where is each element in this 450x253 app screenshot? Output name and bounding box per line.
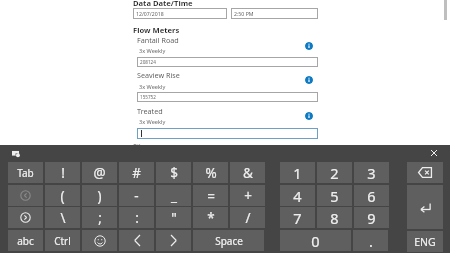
button[interactable]: 8 (317, 207, 352, 228)
button[interactable]: 1 (280, 162, 315, 183)
button[interactable]: Close keyboard (428, 147, 440, 159)
button[interactable]: Space (193, 230, 264, 251)
staticText: 208124 (140, 59, 156, 65)
staticText: / (245, 209, 251, 227)
button[interactable]: ) (82, 185, 117, 206)
button[interactable]: / (230, 207, 265, 228)
staticText: 3x Weekly (139, 118, 166, 126)
button[interactable]: Emoji (82, 230, 117, 251)
button[interactable]: + (230, 185, 265, 206)
button[interactable]: 4 (280, 185, 315, 206)
staticText: Fantail Road (137, 35, 179, 45)
staticText: 1 (293, 163, 302, 183)
button[interactable]: Enter (407, 185, 443, 229)
button[interactable]: Keyboard layout options (11, 149, 21, 158)
staticText: Space (215, 234, 243, 248)
staticText: ENG (414, 235, 436, 249)
button[interactable] (137, 128, 318, 139)
staticText: ; (98, 209, 102, 227)
button[interactable]: Move cursor right (156, 230, 191, 251)
button[interactable]: 6 (354, 185, 389, 206)
staticText: 3x Weekly (139, 47, 166, 55)
button[interactable]: ; (82, 207, 117, 228)
staticText: - (134, 187, 139, 205)
button[interactable]: 7 (280, 207, 315, 228)
staticText: 9 (367, 208, 376, 228)
staticText: Data Date/Time (133, 0, 193, 8)
staticText: Tab (17, 166, 34, 180)
button[interactable]: 12/07/2018 (133, 8, 227, 19)
staticText: = (207, 187, 215, 205)
staticText: abc (17, 234, 34, 248)
button[interactable]: % (193, 162, 228, 183)
button[interactable]: 155752 (137, 92, 318, 102)
button[interactable]: Redo (8, 207, 43, 228)
staticText: ! (61, 164, 65, 182)
staticText: + (244, 187, 252, 205)
staticText: # (132, 164, 141, 182)
button[interactable]: $ (156, 162, 191, 183)
staticText: 8 (330, 208, 339, 228)
button[interactable]: = (193, 185, 228, 206)
staticText: Treated (137, 106, 163, 116)
staticText: : (135, 209, 139, 227)
staticText: ( (60, 187, 65, 205)
button[interactable]: \ (45, 207, 80, 228)
button[interactable]: : (119, 207, 154, 228)
button[interactable]: 9 (354, 207, 389, 228)
staticText: 7 (293, 208, 302, 228)
button[interactable]: _ (156, 185, 191, 206)
staticText: 4 (293, 186, 302, 206)
button[interactable]: Info (305, 42, 313, 50)
button[interactable]: 0 (280, 230, 351, 251)
staticText: 0 (311, 231, 320, 251)
button[interactable]: 2 (317, 162, 352, 183)
staticText: " (171, 209, 177, 227)
staticText: 3 (367, 163, 376, 183)
staticText: * (207, 209, 215, 227)
staticText: % (205, 164, 217, 182)
button[interactable]: Ctrl (45, 230, 80, 251)
staticText: & (243, 164, 253, 182)
button[interactable]: Move cursor left (119, 230, 154, 251)
staticText: 2 (330, 163, 339, 183)
staticText: Ctrl (54, 234, 71, 248)
button[interactable]: ( (45, 185, 80, 206)
staticText: Seaview Rise (137, 70, 180, 80)
button[interactable]: * (193, 207, 228, 228)
button[interactable]: 208124 (137, 57, 318, 67)
button[interactable]: abc (8, 230, 43, 251)
button[interactable]: Info (305, 76, 313, 84)
button[interactable]: Tab (8, 162, 43, 183)
button[interactable]: . (353, 230, 388, 251)
button[interactable]: - (119, 185, 154, 206)
staticText: 5 (330, 186, 339, 206)
staticText: $ (170, 164, 178, 182)
button[interactable]: " (156, 207, 191, 228)
button[interactable]: Backspace (407, 162, 443, 183)
button[interactable]: Info (305, 112, 313, 120)
button[interactable]: # (119, 162, 154, 183)
button[interactable]: ! (45, 162, 80, 183)
staticText: 12/07/2018 (136, 10, 164, 17)
staticText: @ (93, 164, 106, 182)
staticText: . (369, 231, 373, 251)
staticText: 3x Weekly (139, 83, 166, 91)
button[interactable]: 2:50 PM (231, 8, 318, 19)
staticText: Flow Meters (133, 25, 180, 35)
button[interactable]: 3 (354, 162, 389, 183)
staticText: 2:50 PM (234, 10, 254, 17)
staticText: 6 (367, 186, 376, 206)
staticText: \ (60, 209, 66, 227)
staticText: ) (97, 187, 102, 205)
button[interactable]: & (230, 162, 265, 183)
staticText: _ (171, 187, 177, 205)
button[interactable]: Undo (8, 185, 43, 206)
staticText: Site (133, 141, 146, 151)
button[interactable]: ENG (407, 231, 443, 252)
button[interactable]: @ (82, 162, 117, 183)
button[interactable]: 5 (317, 185, 352, 206)
staticText: 155752 (140, 94, 156, 100)
